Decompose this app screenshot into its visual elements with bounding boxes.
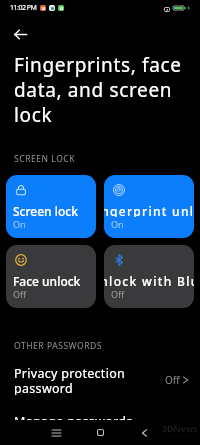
staticText: SCREEN LOCK xyxy=(14,153,76,165)
staticText: OTHER PASSWORDS xyxy=(14,340,102,352)
staticText: 3DNews xyxy=(162,422,198,434)
staticText: 11:02 PM xyxy=(10,3,37,13)
staticText: Off xyxy=(165,373,180,387)
staticText: Off xyxy=(13,288,27,300)
button[interactable]: Unlock with Bluetooth xyxy=(104,245,194,308)
staticText: Privacy protection password xyxy=(14,365,165,395)
button[interactable]: Screen lock xyxy=(6,175,96,238)
staticText: Unlock with Bluetooth xyxy=(104,273,194,287)
button[interactable]: Back xyxy=(129,420,159,445)
button[interactable]: Privacy protection password xyxy=(0,365,200,395)
staticText: Screen lock xyxy=(13,203,78,217)
staticText: Face unlock xyxy=(13,273,81,287)
staticText: Off xyxy=(111,288,125,300)
staticText: Fingerprint unlock xyxy=(104,203,194,217)
button[interactable]: Back xyxy=(7,21,33,47)
staticText: On xyxy=(13,218,26,230)
staticText: On xyxy=(111,218,124,230)
button[interactable]: Fingerprint unlock xyxy=(104,175,194,238)
button[interactable]: Face unlock xyxy=(6,245,96,308)
button[interactable]: Home xyxy=(85,420,115,445)
staticText: Fingerprints, face data, and screen lock xyxy=(14,52,196,128)
button[interactable]: Recent apps xyxy=(41,420,71,445)
staticText: Manage passwords xyxy=(14,413,133,430)
